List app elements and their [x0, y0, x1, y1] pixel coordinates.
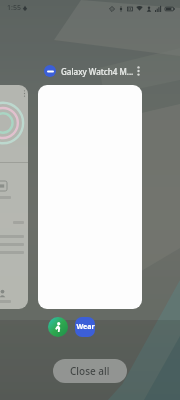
button[interactable]	[0, 85, 28, 309]
staticText: Wear	[76, 322, 95, 332]
button[interactable]: Samsung Health	[48, 317, 68, 337]
button[interactable]: Close all	[53, 359, 127, 383]
button[interactable]: Galaxy Watch4 Manager app icon	[44, 65, 56, 77]
staticText: 1:55	[7, 3, 21, 13]
staticText: Galaxy Watch4 M...	[61, 66, 134, 77]
button[interactable]	[38, 85, 142, 309]
button[interactable]: Wear app	[75, 317, 95, 337]
staticText: Close all	[70, 364, 110, 378]
button[interactable]: More options	[134, 64, 142, 78]
